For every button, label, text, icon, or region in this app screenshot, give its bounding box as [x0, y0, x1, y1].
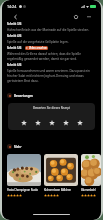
button[interactable]: Video ansehen: [25, 46, 48, 50]
button[interactable]: More options: [85, 13, 92, 20]
button[interactable]: Rate 1 stars: [21, 120, 27, 126]
staticText: Spieße herausnehmen und warm servieren. …: [7, 69, 96, 83]
button[interactable]: Rate 3 stars: [49, 120, 55, 126]
staticText: Schritt 4/6: [7, 34, 22, 38]
staticText: Schritt 3/6: [7, 22, 22, 26]
staticText: Schritt 5/6: [7, 46, 22, 50]
staticText: Schritt 6/6: [7, 63, 22, 67]
button[interactable]: Rate 2 stars: [35, 120, 41, 126]
staticText: Hähnchenfleisch aus der Marinade auf die…: [7, 28, 90, 32]
button[interactable]: Favorite: [72, 13, 79, 20]
staticText: Video ansehen: [29, 46, 47, 50]
button[interactable]: Rate 4 stars: [63, 120, 69, 126]
button[interactable]: Back: [12, 13, 19, 20]
staticText: Spieße auf die vorgeheizte Grillplatte l…: [7, 40, 69, 44]
staticText: Kichererbsen Bällchen: [44, 188, 72, 192]
button[interactable]: Pasta Champignon Rustic: [7, 154, 41, 197]
staticText: Mehr: [14, 145, 22, 149]
staticText: Während des Grillens darauf achten, dass…: [7, 52, 96, 61]
button[interactable]: Rate 5 stars: [77, 120, 83, 126]
staticText: Bewerten Sie dieses Rezept: [33, 106, 70, 110]
staticText: Bewertungen: [14, 94, 33, 98]
staticText: Pasta Champignon Rustic: [7, 188, 39, 192]
button[interactable]: Blumenkohl Wings: [81, 154, 101, 197]
button[interactable]: Kichererbsen Bällchen: [44, 154, 78, 197]
staticText: 14:24: [7, 4, 17, 9]
button[interactable]: Bewerten Sie dieses Rezept: [8, 103, 95, 130]
staticText: Blumenkohl Wings: [81, 188, 101, 192]
